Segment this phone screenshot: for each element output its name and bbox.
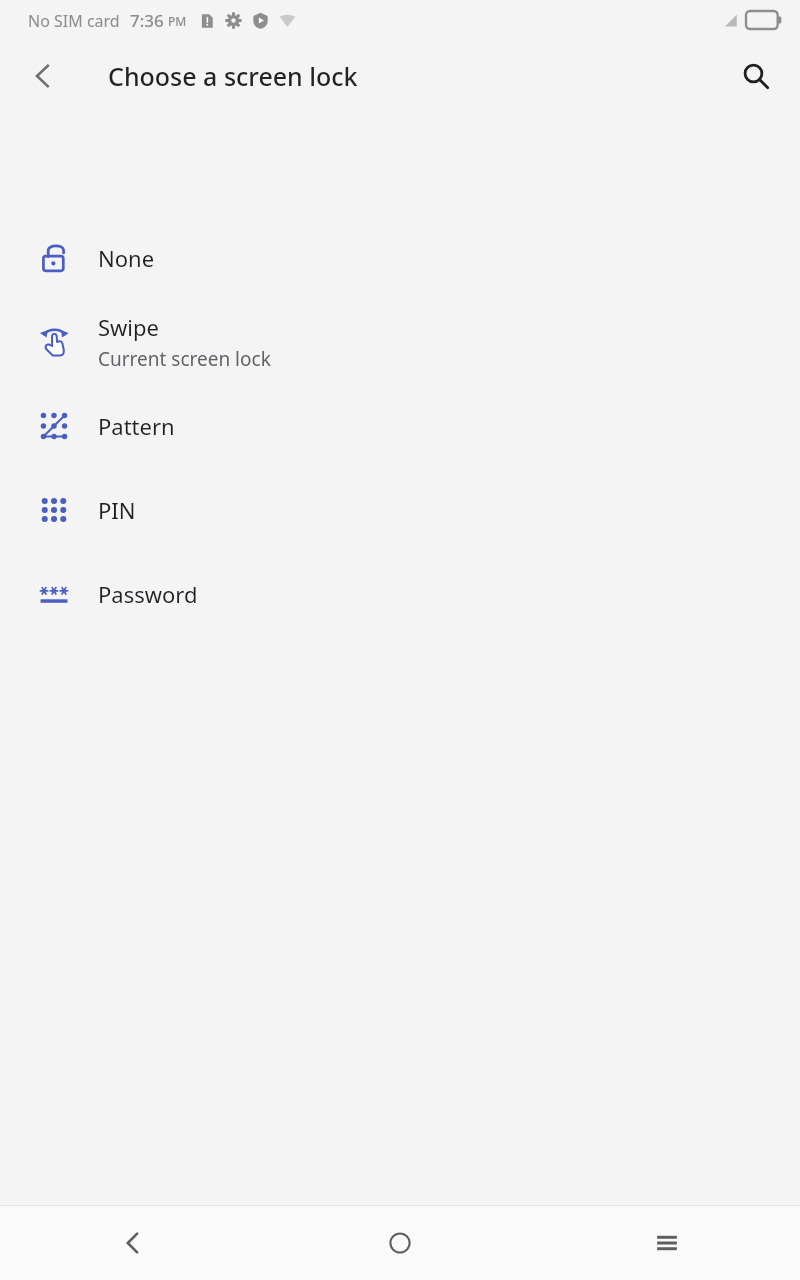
staticText: None: [98, 243, 155, 273]
staticText: Swipe: [98, 312, 159, 342]
staticText: 7:36: [130, 9, 164, 32]
button[interactable]: Swipe: [0, 300, 800, 384]
button[interactable]: None: [0, 216, 800, 300]
staticText: Pattern: [98, 411, 175, 441]
button[interactable]: Pattern: [0, 384, 800, 468]
button[interactable]: Recent apps: [533, 1206, 800, 1280]
staticText: PIN: [98, 495, 136, 525]
button[interactable]: Password: [0, 552, 800, 636]
staticText: Password: [98, 579, 198, 609]
button[interactable]: Back: [0, 1206, 266, 1280]
button[interactable]: Home: [266, 1206, 533, 1280]
staticText: Current screen lock: [98, 346, 271, 372]
staticText: PM: [168, 13, 187, 29]
button[interactable]: Search: [726, 46, 786, 106]
button[interactable]: Back: [12, 45, 74, 107]
button[interactable]: PIN: [0, 468, 800, 552]
staticText: Choose a screen lock: [108, 59, 358, 93]
staticText: No SIM card: [28, 10, 120, 32]
